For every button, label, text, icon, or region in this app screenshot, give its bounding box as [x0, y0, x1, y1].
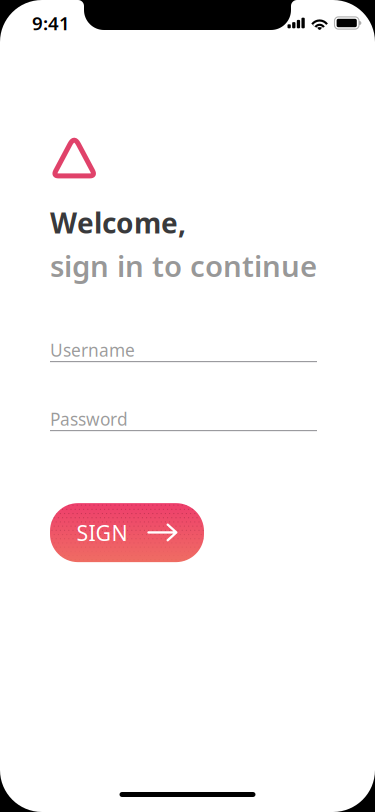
staticText: sign in to continue: [50, 246, 317, 285]
staticText: Password: [50, 408, 128, 431]
staticText: 9:41: [32, 11, 70, 35]
button[interactable]: Password: [50, 411, 317, 431]
staticText: Welcome,: [50, 204, 186, 241]
button[interactable]: Username: [50, 342, 317, 362]
staticText: SIGN: [76, 518, 127, 547]
staticText: Username: [50, 339, 135, 362]
button[interactable]: SIGN: [50, 503, 204, 562]
